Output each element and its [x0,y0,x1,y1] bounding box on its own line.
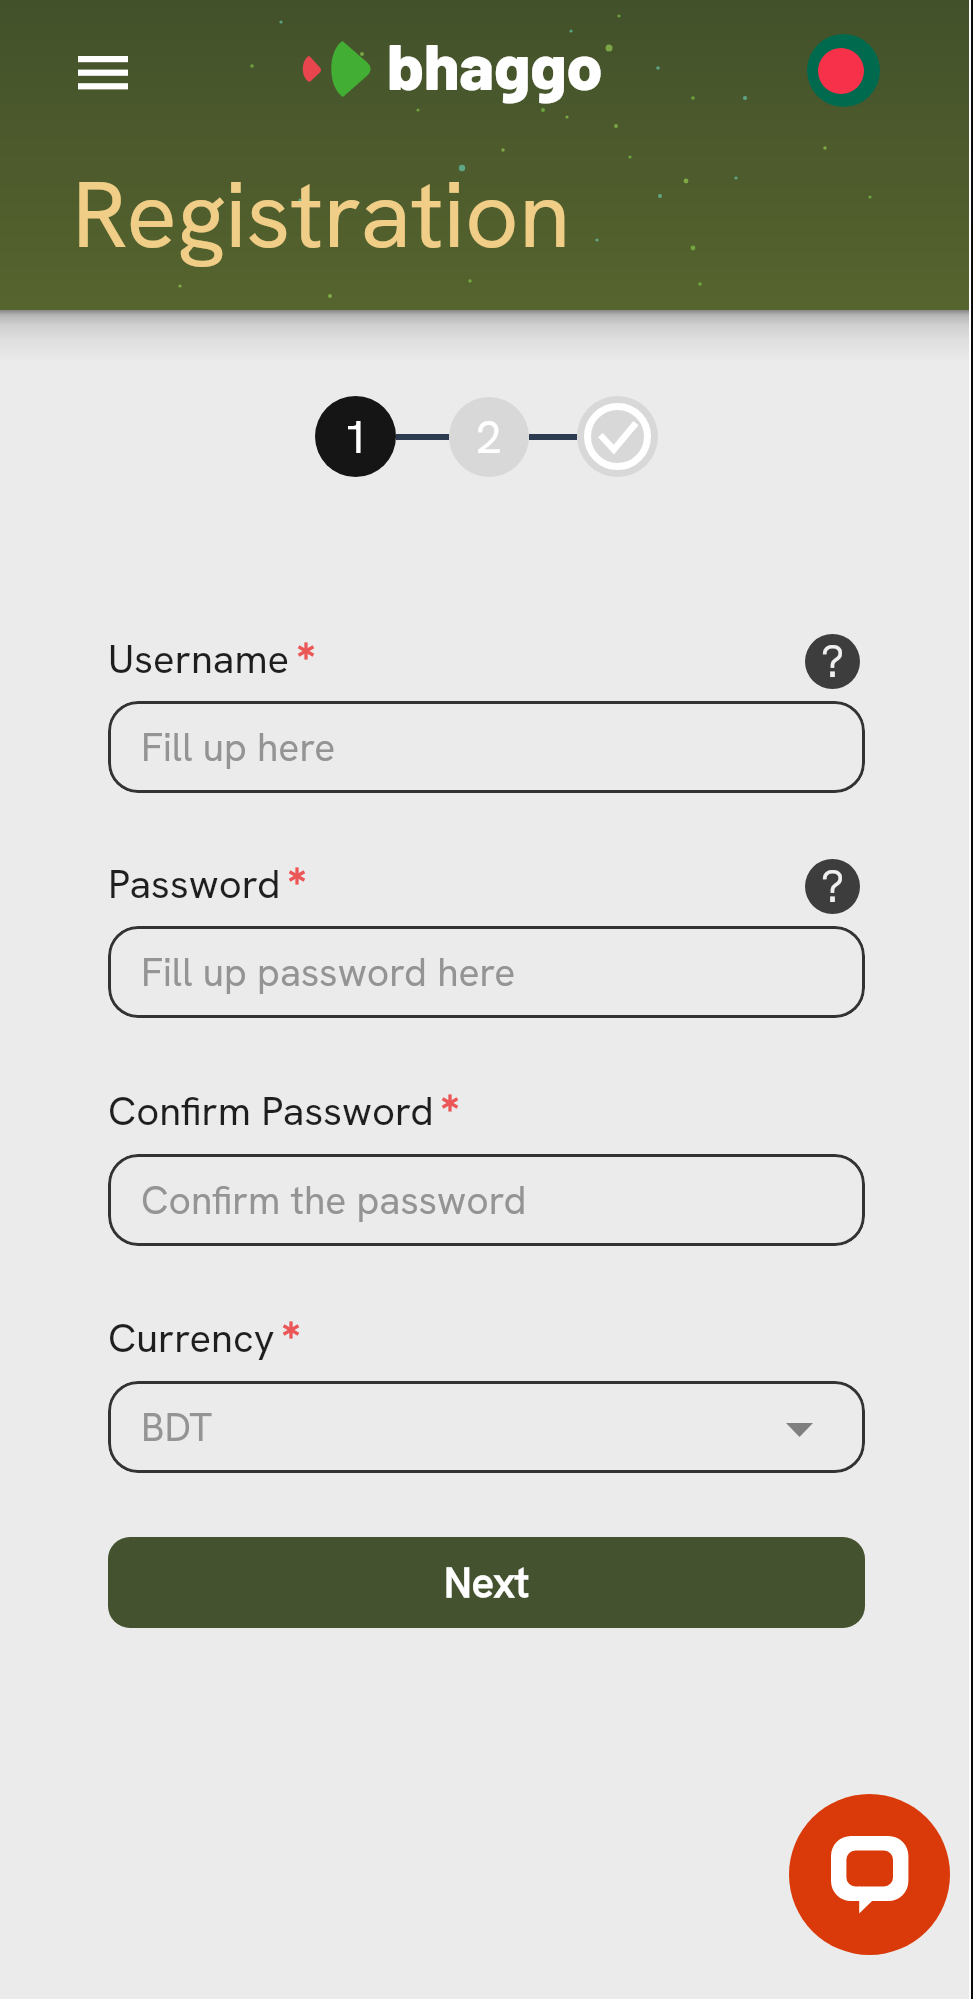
button[interactable]: Help [805,634,860,689]
button[interactable]: Next [108,1537,865,1628]
staticText: Fill up password here [141,947,516,998]
staticText: Confirm Password [108,1085,434,1137]
staticText: Currency [108,1312,275,1364]
button[interactable]: BDT [108,1381,865,1473]
staticText: ? [821,859,845,912]
button[interactable]: Confirm the password [108,1154,865,1246]
staticText: Fill up here [141,722,336,773]
staticText: 2 [476,407,502,467]
button[interactable]: Fill up password here [108,926,865,1018]
staticText: Password [108,858,281,910]
staticText: BDT [141,1402,213,1453]
button[interactable]: Help [805,859,860,914]
button[interactable]: Completed step [577,396,658,477]
staticText: Next [444,1556,529,1609]
staticText: 1 [343,407,369,467]
staticText: Confirm the password [141,1175,527,1226]
button[interactable]: Language [807,34,880,107]
staticText: Registration [72,153,571,275]
staticText: Username [108,633,290,685]
button[interactable]: Chat support [789,1794,950,1955]
button[interactable]: Menu [78,46,128,99]
button[interactable]: 2 [449,397,529,477]
button[interactable]: 1 [315,396,396,477]
button[interactable]: Fill up here [108,701,865,793]
staticText: ? [821,634,845,687]
staticText: bhaggo [387,25,603,102]
